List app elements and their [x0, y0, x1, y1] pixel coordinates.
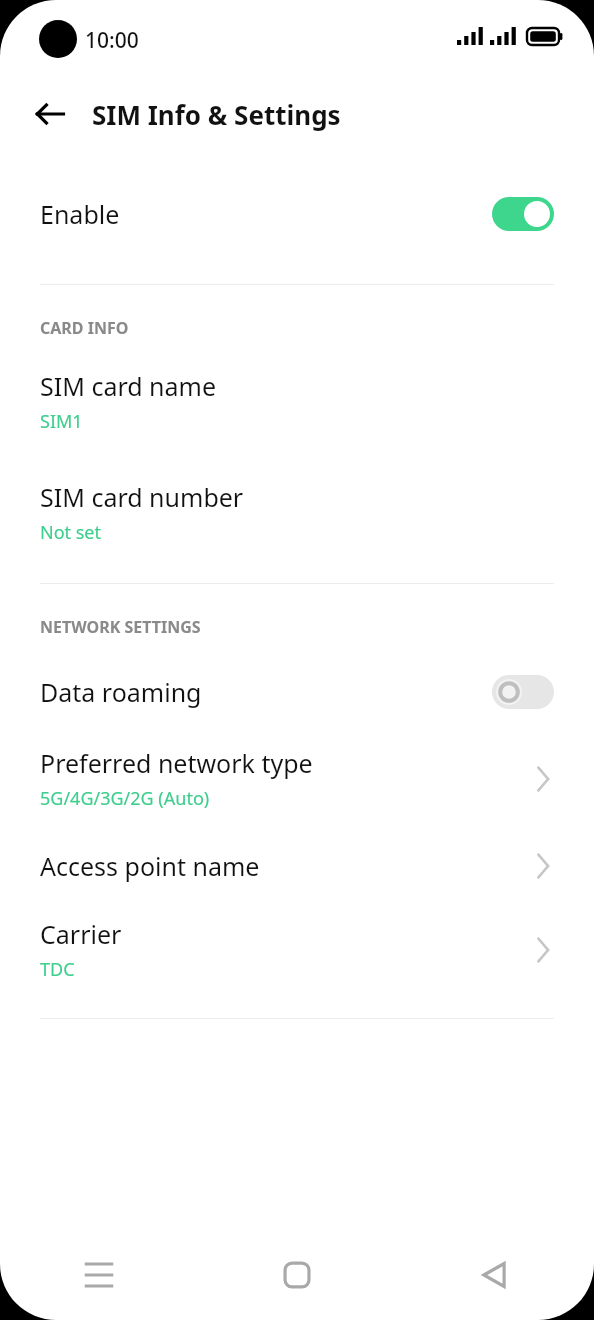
button[interactable]: Back	[22, 86, 78, 142]
button[interactable]: Enable switch, on	[492, 197, 554, 231]
button[interactable]: Recent apps	[0, 1230, 198, 1320]
button[interactable]: Access point name	[0, 845, 594, 887]
staticText: Enable	[40, 197, 492, 231]
staticText: Carrier	[40, 917, 122, 951]
staticText: Preferred network type	[40, 746, 313, 780]
button[interactable]: Preferred network type	[0, 742, 594, 815]
staticText: SIM card number	[40, 480, 244, 514]
staticText: Data roaming	[40, 675, 492, 709]
staticText: TDC	[40, 957, 75, 982]
staticText: CARD INFO	[40, 317, 129, 339]
button[interactable]: SIM card name	[0, 365, 594, 438]
button[interactable]: Data roaming	[0, 656, 594, 728]
staticText: SIM1	[40, 409, 83, 434]
button[interactable]: Carrier	[0, 913, 594, 986]
button[interactable]: Home	[198, 1230, 396, 1320]
staticText: 10:00	[85, 26, 139, 55]
staticText: Not set	[40, 520, 102, 545]
button[interactable]: Enable	[0, 170, 594, 258]
staticText: NETWORK SETTINGS	[40, 616, 201, 638]
staticText: SIM card name	[40, 369, 217, 403]
button[interactable]: Data roaming switch, off	[492, 675, 554, 709]
staticText: 5G/4G/3G/2G (Auto)	[40, 786, 210, 811]
button[interactable]: SIM card number	[0, 476, 594, 549]
staticText: SIM Info & Settings	[92, 97, 341, 132]
button[interactable]: Back	[396, 1230, 594, 1320]
staticText: Access point name	[40, 849, 260, 883]
